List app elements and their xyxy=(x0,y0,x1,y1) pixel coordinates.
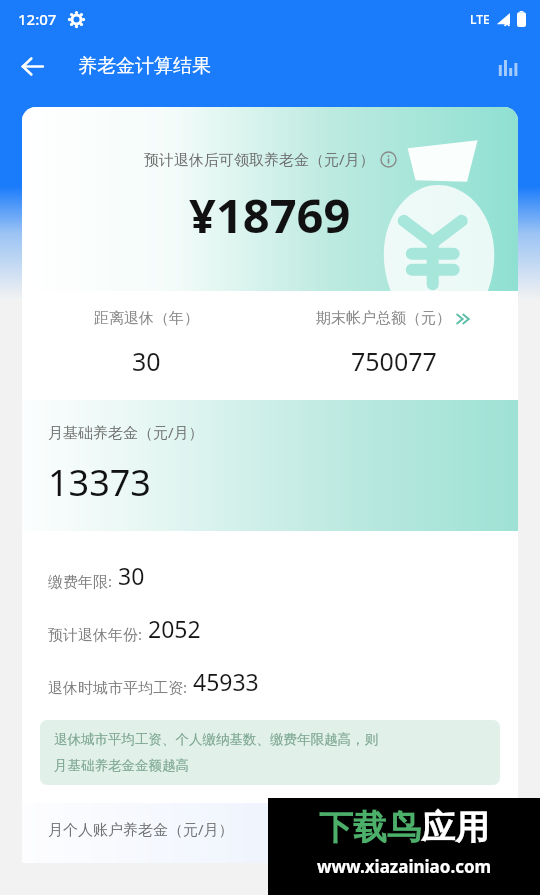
button[interactable]: 预计退休年份: xyxy=(22,602,518,655)
button[interactable]: 退休时城市平均工资: xyxy=(22,655,518,708)
staticText: 预计退休年份: xyxy=(48,624,143,644)
staticText: 45933 xyxy=(193,666,259,697)
staticText: 应用 xyxy=(421,806,489,849)
staticText: 预计退休后可领取养老金（元/月） xyxy=(144,149,375,169)
button[interactable]: Back xyxy=(8,42,56,90)
staticText: 12:07 xyxy=(18,9,57,29)
staticText: 750077 xyxy=(351,344,437,378)
staticText: 养老金计算结果 xyxy=(78,54,211,78)
button[interactable]: 距离退休（年） xyxy=(22,309,270,378)
staticText: 月个人账户养老金（元/月） xyxy=(48,819,234,839)
staticText: ¥18769 xyxy=(189,183,351,247)
staticText: 距离退休（年） xyxy=(94,309,199,328)
button[interactable]: Chart xyxy=(486,44,530,88)
staticText: 下载鸟 xyxy=(319,806,421,849)
staticText: 期末帐户总额（元） xyxy=(316,309,451,328)
staticText: LTE xyxy=(470,11,490,27)
staticText: 2052 xyxy=(148,613,201,644)
staticText: 缴费年限: xyxy=(48,571,113,591)
staticText: 月基础养老金金额越高 xyxy=(54,757,189,774)
staticText: 13373 xyxy=(48,458,151,507)
staticText: 30 xyxy=(118,560,145,591)
button[interactable]: Info xyxy=(380,151,397,168)
staticText: 退休时城市平均工资: xyxy=(48,677,188,697)
button[interactable]: 期末帐户总额（元） xyxy=(270,309,518,378)
staticText: 月基础养老金（元/月） xyxy=(48,422,204,442)
staticText: www.xiazainiao.com xyxy=(317,855,492,878)
button[interactable]: 缴费年限: xyxy=(22,549,518,602)
staticText: 退休城市平均工资、个人缴纳基数、缴费年限越高，则 xyxy=(54,731,378,748)
staticText: 30 xyxy=(132,344,161,378)
